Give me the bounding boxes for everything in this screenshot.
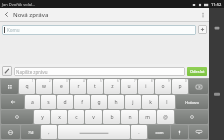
- staticText: .: [138, 129, 140, 136]
- button[interactable]: Hide keyboard: [189, 125, 208, 139]
- staticText: y: [41, 114, 44, 121]
- button[interactable]: Change language: [1, 125, 20, 139]
- button[interactable]: s: [41, 95, 56, 109]
- button[interactable]: Napište zprávu: [14, 67, 185, 76]
- button[interactable]: u: [121, 79, 137, 94]
- staticText: b: [110, 114, 114, 121]
- button[interactable]: m: [139, 110, 156, 124]
- staticText: k: [149, 99, 152, 106]
- staticText: Hotovo: [185, 100, 199, 105]
- button[interactable]: q: [19, 79, 35, 94]
- staticText: ?!#: [28, 130, 34, 135]
- button[interactable]: Shift: [175, 110, 208, 124]
- button[interactable]: b: [103, 110, 120, 124]
- button[interactable]: j: [125, 95, 141, 109]
- staticText: w: [42, 83, 46, 90]
- staticText: 9: [168, 79, 170, 83]
- button[interactable]: l: [159, 95, 175, 109]
- button[interactable]: Recent apps: [211, 22, 223, 34]
- button[interactable]: e: [53, 79, 69, 94]
- staticText: h: [114, 99, 118, 106]
- staticText: com: [155, 130, 164, 135]
- button[interactable]: Camera: [211, 88, 223, 100]
- staticText: Komu: [7, 27, 20, 33]
- button[interactable]: Backspace: [189, 79, 208, 94]
- staticText: c: [75, 114, 78, 121]
- staticText: z: [111, 83, 114, 90]
- button[interactable]: Attach: [2, 66, 12, 76]
- staticText: v: [92, 114, 95, 121]
- button[interactable]: Voice input: [171, 125, 188, 139]
- button[interactable]: x: [51, 110, 67, 124]
- button[interactable]: g: [91, 95, 107, 109]
- button[interactable]: p: [172, 79, 188, 94]
- staticText: j: [132, 99, 134, 106]
- staticText: g: [97, 99, 101, 106]
- staticText: 3: [66, 79, 68, 83]
- staticText: 0: [185, 79, 187, 83]
- button[interactable]: Komu: [2, 25, 196, 35]
- button[interactable]: z: [104, 79, 120, 94]
- button[interactable]: More options: [196, 8, 209, 21]
- staticText: 1: [32, 79, 34, 83]
- staticText: r: [77, 83, 80, 90]
- staticText: Nová zpráva: [13, 11, 49, 19]
- button[interactable]: r: [70, 79, 86, 94]
- button[interactable]: ?!#: [21, 125, 40, 139]
- button[interactable]: Back: [0, 8, 13, 21]
- staticText: @: [163, 114, 168, 121]
- staticText: x: [58, 114, 61, 121]
- staticText: n: [128, 114, 132, 121]
- button[interactable]: Shift: [1, 110, 33, 124]
- staticText: e: [60, 83, 63, 90]
- staticText: q: [25, 83, 29, 90]
- staticText: Jan Dvořák volal...: [2, 2, 36, 7]
- button[interactable]: v: [85, 110, 102, 124]
- button[interactable]: t: [87, 79, 103, 94]
- staticText: s: [47, 99, 50, 106]
- button[interactable]: h: [108, 95, 124, 109]
- button[interactable]: k: [142, 95, 158, 109]
- button[interactable]: f: [74, 95, 90, 109]
- staticText: Odeslat: [190, 69, 205, 74]
- staticText: p: [178, 83, 182, 90]
- staticText: t: [94, 83, 96, 90]
- staticText: 7: [134, 79, 136, 83]
- staticText: l: [166, 99, 168, 106]
- staticText: 6: [117, 79, 119, 83]
- button[interactable]: y: [34, 110, 50, 124]
- button[interactable]: Add recipient: [198, 25, 207, 34]
- button[interactable]: @: [157, 110, 174, 124]
- staticText: 5: [100, 79, 102, 83]
- button[interactable]: Odeslat: [187, 67, 207, 76]
- button[interactable]: Tab: [1, 95, 24, 109]
- button[interactable]: .: [131, 125, 147, 139]
- button[interactable]: ,: [41, 125, 57, 139]
- staticText: 8: [151, 79, 153, 83]
- staticText: m: [145, 114, 150, 121]
- staticText: a: [31, 99, 34, 106]
- button[interactable]: d: [57, 95, 73, 109]
- staticText: o: [161, 83, 165, 90]
- button[interactable]: o: [155, 79, 171, 94]
- button[interactable]: c: [68, 110, 84, 124]
- staticText: 11:52: [211, 2, 222, 7]
- staticText: f: [81, 99, 83, 106]
- button[interactable]: n: [121, 110, 138, 124]
- staticText: u: [127, 83, 131, 90]
- button[interactable]: a: [25, 95, 40, 109]
- staticText: d: [63, 99, 67, 106]
- button[interactable]: Space: [58, 125, 130, 139]
- staticText: ,: [48, 129, 50, 136]
- staticText: 2: [49, 79, 51, 83]
- staticText: i: [145, 83, 147, 90]
- button[interactable]: Hotovo: [176, 95, 208, 109]
- staticText: Napište zprávu: [16, 69, 48, 75]
- button[interactable]: Symbols: [1, 79, 18, 94]
- button[interactable]: com: [148, 125, 170, 139]
- staticText: 4: [83, 79, 85, 83]
- button[interactable]: w: [36, 79, 52, 94]
- button[interactable]: i: [138, 79, 154, 94]
